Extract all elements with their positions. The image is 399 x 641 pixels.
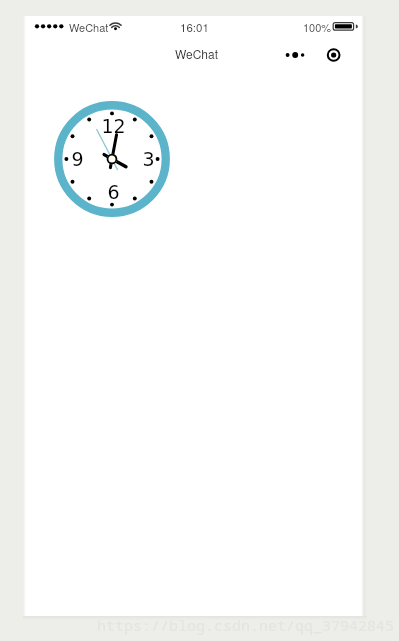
staticText: 9 [71,148,84,170]
button[interactable]: Close mini program [322,44,346,68]
staticText: 3 [142,148,155,170]
staticText: https://blog.csdn.net/qq_37942845 [97,615,395,635]
button[interactable]: More options [279,44,309,66]
staticText: WeChat [175,45,218,62]
staticText: 12 [101,115,126,137]
staticText: 100% [303,19,332,35]
staticText: WeChat [69,19,109,35]
staticText: 16:01 [180,19,209,35]
staticText: 6 [107,181,120,203]
